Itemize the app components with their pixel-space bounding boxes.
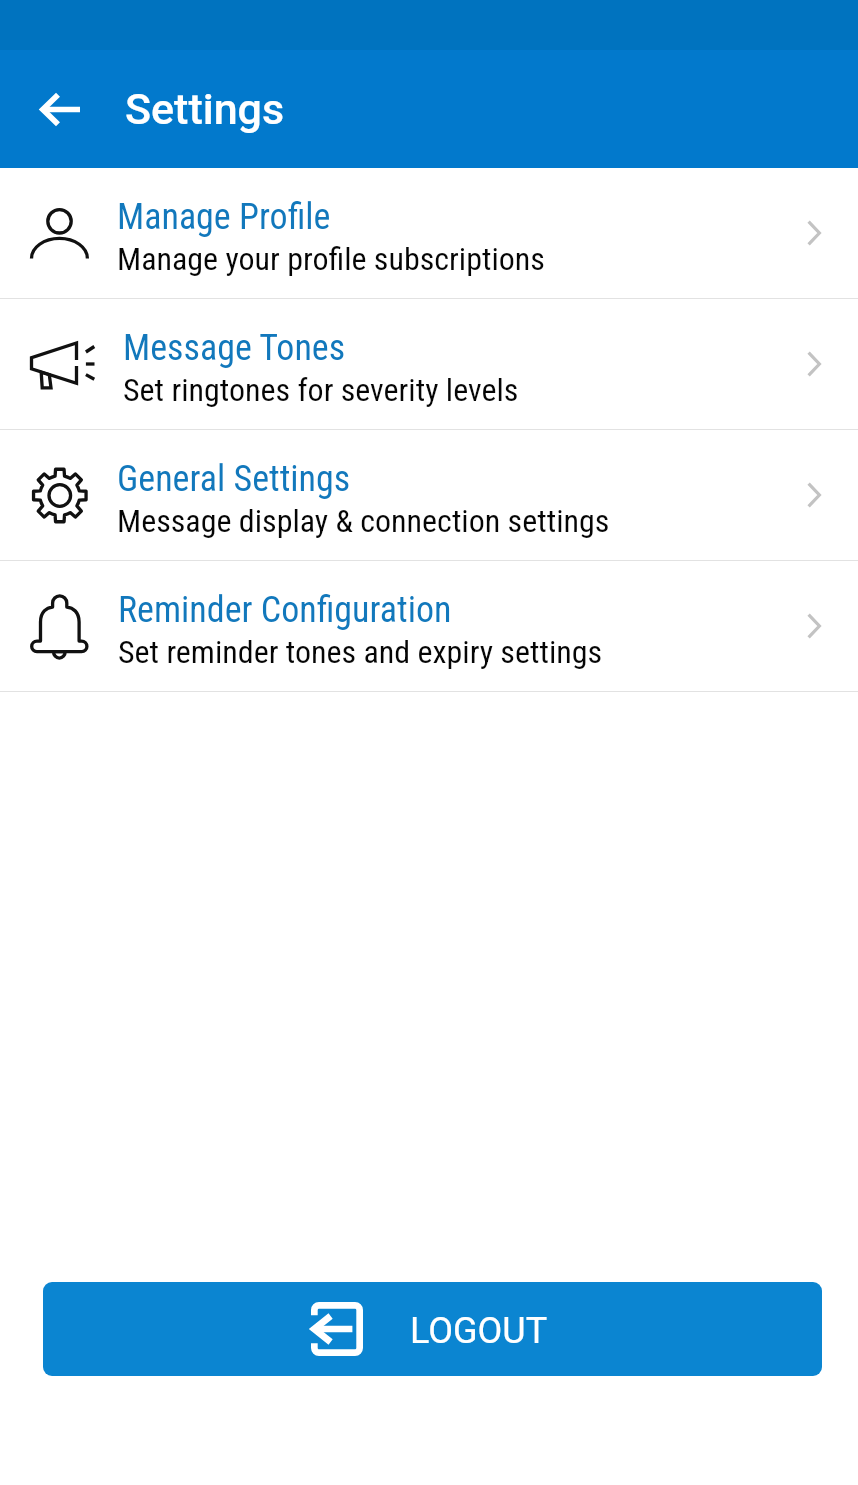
button[interactable]: Reminder Configuration — [0, 561, 858, 691]
staticText: General Settings — [117, 458, 351, 500]
staticText: LOGOUT — [410, 1310, 548, 1352]
button[interactable]: General Settings — [0, 430, 858, 560]
staticText: Settings — [125, 84, 285, 134]
staticText: Manage Profile — [117, 196, 331, 238]
staticText: Set reminder tones and expiry settings — [118, 633, 603, 671]
staticText: Reminder Configuration — [118, 589, 452, 631]
staticText: Message display & connection settings — [117, 502, 610, 540]
button[interactable]: Manage Profile — [0, 168, 858, 298]
button[interactable]: Back — [17, 50, 103, 168]
button[interactable]: Message Tones — [0, 299, 858, 429]
button[interactable]: LOGOUT — [43, 1282, 822, 1376]
staticText: Manage your profile subscriptions — [117, 240, 545, 278]
staticText: Message Tones — [123, 327, 346, 369]
staticText: Set ringtones for severity levels — [123, 371, 519, 409]
